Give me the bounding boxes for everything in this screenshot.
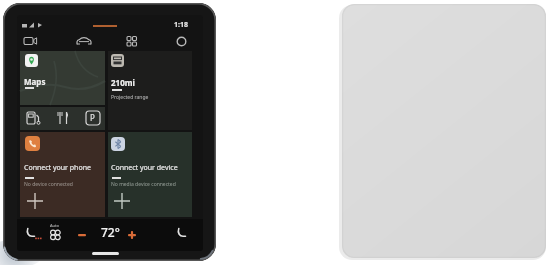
staticText: Maps [24, 76, 46, 87]
staticText: P [90, 112, 95, 123]
staticText: Auto [50, 223, 59, 228]
staticText: No device connected [24, 181, 73, 188]
staticText: No media device connected [111, 181, 176, 188]
staticText: 210mi [111, 77, 135, 88]
button[interactable]: Maps [20, 51, 105, 105]
button[interactable]: Connect your phone [20, 132, 105, 217]
staticText: 1:18 [174, 20, 188, 30]
staticText: Connect your phone [24, 163, 91, 173]
staticText: 72° [101, 224, 120, 240]
button[interactable]: Connect your device [108, 132, 192, 217]
button[interactable]: 210mi [108, 51, 192, 130]
staticText: Projected range [111, 94, 149, 101]
button[interactable]: Auto [17, 219, 203, 251]
staticText: Connect your device [111, 163, 178, 173]
button[interactable]: P [20, 107, 105, 130]
